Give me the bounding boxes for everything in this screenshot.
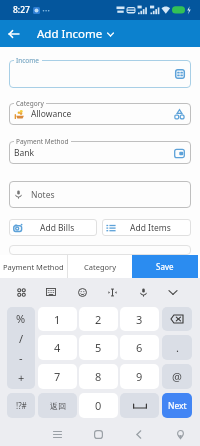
button[interactable]: 7 [38,364,77,389]
button[interactable]: Back [128,423,150,445]
button[interactable]: Notes [9,181,191,208]
button[interactable]: 9 [120,364,159,389]
button[interactable]: !?# [7,393,35,418]
staticText: 2 [95,312,102,327]
button[interactable]: Apps [8,279,34,305]
staticText: @ [172,369,182,384]
staticText: 6 [136,340,143,355]
button[interactable]: 4 [38,335,77,360]
staticText: Add Income [37,26,103,42]
staticText: Allowance [31,108,72,120]
button[interactable]: % [7,307,35,389]
staticText: Income [16,56,40,65]
button[interactable]: Home [87,423,109,445]
staticText: 8 [95,369,102,384]
button[interactable]: Text edit [99,279,125,305]
button[interactable]: Save [132,255,198,278]
button[interactable]: 3 [120,307,159,331]
button[interactable] [120,393,159,418]
button[interactable]: Add Items [102,219,191,236]
staticText: Add Bills [40,222,75,234]
staticText: % [16,311,26,326]
button[interactable]: Hide navigation [169,423,191,445]
staticText: 7 [54,369,61,384]
staticText: Add Items [130,222,171,234]
button[interactable]: 6 [120,335,159,360]
button[interactable]: Hide keyboard [160,279,186,305]
button[interactable]: Keyboard layout [38,279,64,305]
staticText: / [19,331,24,346]
button[interactable]: 1 [38,307,77,331]
button[interactable]: Next [162,393,192,418]
staticText: Next [168,400,187,412]
staticText: 4 [54,340,61,355]
staticText: Category [84,262,116,272]
button[interactable]: Emoji [69,279,95,305]
button[interactable]: 8 [79,364,118,389]
staticText: Bank [14,147,35,159]
staticText: 返回 [50,401,66,411]
staticText: !?# [16,400,27,411]
button[interactable] [162,307,192,331]
button[interactable]: Category [68,255,132,278]
staticText: 5 [95,340,102,355]
button[interactable] [9,103,191,125]
button[interactable]: Voice input [130,279,156,305]
button[interactable]: 2 [79,307,118,331]
staticText: 1 [54,312,61,327]
button[interactable]: Back [0,20,27,47]
button[interactable]: 返回 [38,393,77,418]
button[interactable] [9,60,191,88]
staticText: - [19,350,23,365]
button[interactable]: 0 [79,393,118,418]
button[interactable]: @ [162,364,192,389]
button[interactable]: 5 [79,335,118,360]
staticText: Save [156,261,174,272]
staticText: 9 [136,369,143,384]
button[interactable] [9,141,191,164]
staticText: Payment Method [3,262,64,272]
staticText: 3 [136,312,143,327]
button[interactable]: . [162,335,192,360]
button[interactable]: Add Income [36,21,115,47]
staticText: 0 [95,398,102,413]
staticText: + [18,370,25,385]
staticText: . [176,340,179,355]
button[interactable]: Recent apps [46,423,68,445]
staticText: Payment Method [16,137,69,146]
staticText: 8:27 [13,4,30,16]
button[interactable]: Payment Method [0,255,67,278]
staticText: Notes [31,189,55,201]
staticText: Category [16,99,44,108]
button[interactable]: Add Bills [9,219,97,236]
